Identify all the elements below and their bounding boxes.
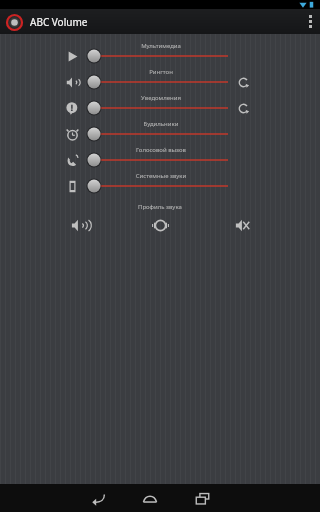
- button[interactable]: App icon: [5, 13, 23, 31]
- staticText: Будильники: [93, 120, 229, 128]
- button[interactable]: Recent apps: [185, 484, 219, 512]
- staticText: ABC Volume: [30, 15, 88, 29]
- button[interactable]: Голосовой вызов: [0, 144, 320, 170]
- other: alarm: [65, 127, 80, 142]
- button[interactable]: Мультимедиа: [0, 40, 320, 66]
- staticText: Профиль звука: [138, 203, 182, 211]
- staticText: Голосовой вызов: [93, 146, 229, 154]
- other: device: [65, 179, 80, 194]
- other: speaker: [65, 75, 80, 90]
- button[interactable]: Link volumes: [236, 75, 250, 89]
- button[interactable]: Уведомления: [0, 92, 320, 118]
- button[interactable]: Link volumes: [236, 101, 250, 115]
- staticText: Системные звуки: [93, 172, 229, 180]
- button[interactable]: Рингтон: [0, 66, 320, 92]
- button[interactable]: Системные звуки: [0, 170, 320, 196]
- button[interactable]: Home: [133, 484, 167, 512]
- button[interactable]: More options: [300, 9, 320, 34]
- other: phone: [65, 153, 80, 168]
- button[interactable]: Vibrate profile: [148, 213, 172, 237]
- button[interactable]: Sound profile: [66, 213, 90, 237]
- other: bubble: [65, 101, 80, 116]
- button[interactable]: Back: [81, 484, 115, 512]
- button[interactable]: Будильники: [0, 118, 320, 144]
- staticText: Мультимедиа: [93, 42, 229, 50]
- other: play: [65, 49, 80, 64]
- button[interactable]: Silent profile: [230, 213, 254, 237]
- staticText: Уведомления: [93, 94, 229, 102]
- staticText: Рингтон: [93, 68, 229, 76]
